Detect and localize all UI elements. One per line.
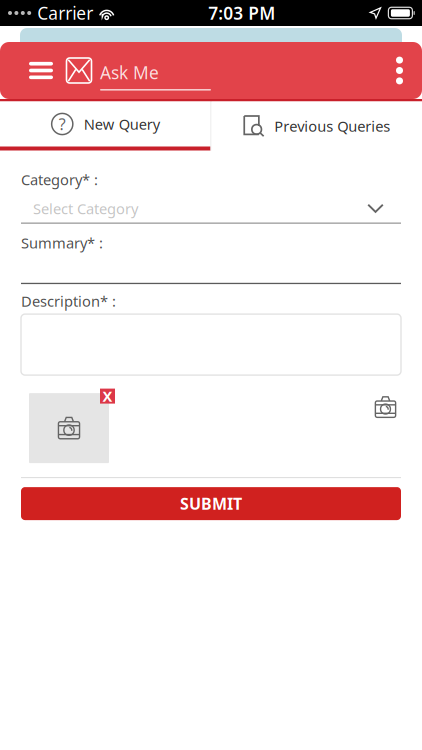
button[interactable]	[21, 314, 401, 375]
button[interactable]: Remove photo	[100, 389, 115, 404]
staticText: Category* :	[21, 170, 98, 189]
button[interactable]	[21, 253, 401, 284]
staticText: 7:03 PM	[208, 1, 275, 24]
staticText: New Query	[84, 114, 160, 134]
staticText: SUBMIT	[180, 493, 242, 514]
staticText: Ask Me	[100, 61, 159, 84]
staticText: Select Category	[33, 199, 138, 218]
button[interactable]: Menu	[29, 42, 53, 99]
staticText: Description* :	[21, 291, 116, 311]
button[interactable]: Previous Queries	[211, 101, 422, 150]
staticText: Carrier	[37, 1, 93, 24]
button[interactable]: Ask Me	[100, 42, 211, 99]
button[interactable]: More options	[377, 42, 422, 99]
button[interactable]: ?	[0, 101, 210, 150]
button[interactable]: Take photo	[370, 393, 401, 421]
button[interactable]: SUBMIT	[21, 487, 401, 520]
staticText: Summary* :	[21, 233, 103, 253]
button[interactable]: Select Category	[21, 198, 401, 224]
button[interactable]: Attached photo	[29, 393, 109, 463]
button[interactable]: Messages	[66, 42, 92, 99]
staticText: X	[102, 386, 112, 406]
staticText: Previous Queries	[274, 116, 390, 136]
staticText: ?	[59, 113, 66, 135]
